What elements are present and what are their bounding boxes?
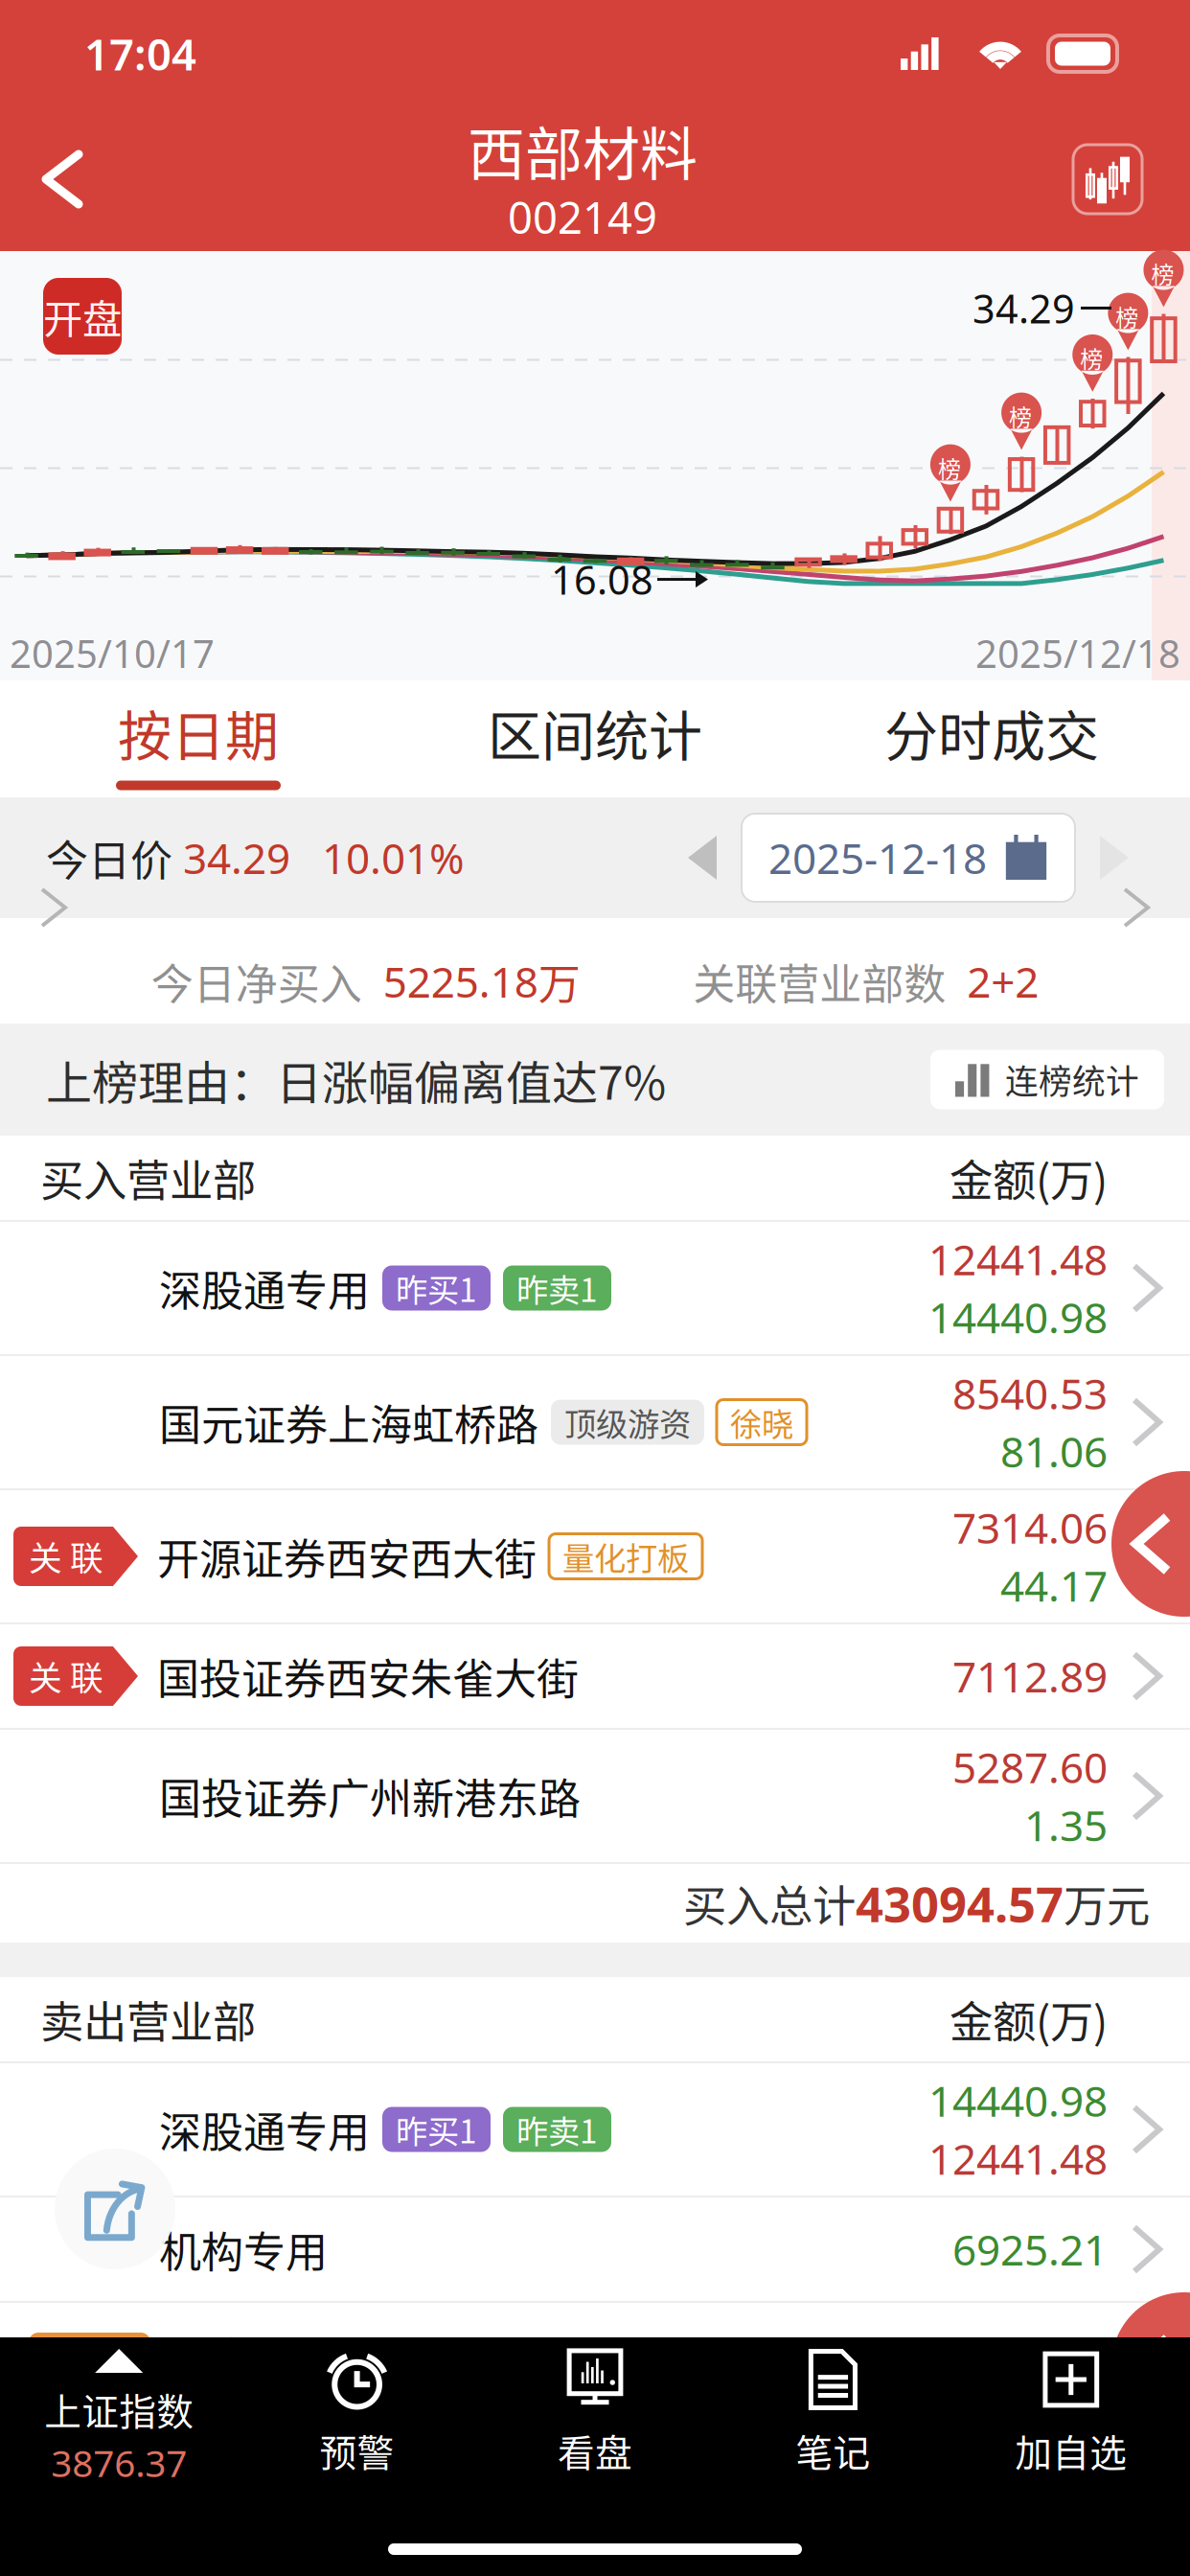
staticText: 国投证券广州新港东路 [159,1765,581,1826]
staticText: 002149 [508,188,657,246]
staticText: 81.06 [1000,1423,1108,1479]
staticText: 7112.89 [952,1648,1108,1704]
staticText: 国金证券上海互联网 [168,2325,547,2386]
staticText: 昨卖1 [516,1265,598,1311]
staticText: 徐晓 [730,1399,793,1445]
staticText: 2025-12-18 [768,830,987,886]
staticText: 7314.06 [952,1499,1108,1555]
staticText: 44.17 [1000,1557,1108,1613]
staticText: 榜 [1151,256,1174,290]
staticText: 看盘 [558,2424,632,2477]
staticText: 连榜统计 [1005,1056,1139,1104]
staticText: 买入总计 [683,1872,856,1935]
staticText: 榜 [1009,399,1032,433]
staticText: 34.29 [973,282,1075,334]
staticText: 关 联 [29,1532,103,1580]
staticText: 一年内 [42,2332,137,2378]
staticText: 按日期 [118,693,279,771]
staticText: 笔记 [796,2424,870,2477]
button[interactable]: 按日期 [0,680,397,797]
button[interactable]: Expand sell panel [1111,2292,1190,2438]
staticText: 14440.98 [928,1289,1108,1345]
button[interactable]: 连榜统计 [930,1050,1164,1109]
staticText: 机构专用 [159,2219,328,2280]
staticText: 关联营业部数 [693,951,946,1012]
staticText: 5225.18 [362,953,538,1009]
staticText: 今日净买入 [151,951,362,1012]
button[interactable]: 上证指数 [0,2349,238,2483]
staticText: 开盘 [43,288,122,345]
staticText: 关 联 [29,1652,103,1700]
button[interactable]: 关 联 [0,1624,1190,1730]
staticText: 16.08 [551,553,653,606]
staticText: 量化打板 [562,1533,689,1580]
button[interactable]: 加自选 [952,2349,1190,2483]
button[interactable]: Back [0,107,125,251]
staticText: 6342.80 [952,2327,1108,2383]
button[interactable]: 看盘 [476,2349,714,2483]
staticText: 今日价 [46,827,172,888]
staticText: 上证指数 [44,2382,194,2436]
staticText: 榜 [938,451,961,484]
staticText: 2025/10/17 [10,628,215,678]
button[interactable]: 国投证券广州新港东路 [0,1730,1190,1864]
staticText: 10.01% [290,830,465,886]
staticText: 昨买1 [396,2106,477,2153]
staticText: 国投证券西安朱雀大街 [157,1646,579,1707]
staticText: 万 [538,951,580,1012]
staticText: 西部材料 [468,109,698,192]
staticText: 43094.57 [856,1871,1064,1936]
staticText: 加自选 [1015,2424,1127,2477]
button[interactable]: 关 联 [0,1490,1190,1624]
staticText: 上榜理由：日涨幅偏离值达7% [46,1046,666,1113]
staticText: 卖出营业部 [40,1988,256,2051]
button[interactable]: 区间统计 [397,680,793,797]
staticText: 2025/12/18 [975,628,1180,678]
button[interactable]: 一年内 [0,2303,1190,2407]
button[interactable]: 机构专用 [0,2197,1190,2303]
staticText: 昨买1 [396,1265,477,1311]
staticText: 12441.48 [928,2130,1108,2186]
staticText: 14440.98 [928,2072,1108,2128]
button[interactable]: Expand panel [1111,1471,1190,1617]
staticText: 昨卖1 [516,2106,598,2153]
button[interactable]: 分时成交 [793,680,1190,797]
staticText: 开源证券西安西大街 [157,1526,537,1587]
staticText: 6925.21 [952,2221,1108,2277]
staticText: 深股通专用 [159,2099,370,2160]
staticText: 金额(万) [950,1146,1108,1209]
staticText: 深股通专用 [159,1257,370,1318]
button[interactable]: 笔记 [714,2349,952,2483]
staticText: 万元 [1064,1872,1150,1935]
button[interactable]: 国元证券上海虹桥路 [0,1356,1190,1490]
staticText: 顶级游资 [564,1399,691,1445]
button[interactable]: Previous day [663,836,742,880]
staticText: 5287.60 [952,1739,1108,1795]
button[interactable]: K-line chart [1073,145,1190,214]
staticText: 预警 [320,2424,394,2477]
button[interactable]: 深股通专用 [0,1222,1190,1356]
staticText: 1.35 [1024,1797,1108,1853]
button[interactable]: Share [55,2149,175,2269]
staticText: 榜 [1080,341,1103,375]
button[interactable]: 深股通专用 [0,2063,1190,2197]
staticText: 区间统计 [488,693,702,771]
staticText: 分时成交 [884,693,1099,771]
staticText: 34.29 [172,830,290,886]
staticText: 8540.53 [952,1365,1108,1421]
button[interactable]: 2025-12-18 [742,814,1075,902]
staticText: 国元证券上海虹桥路 [159,1392,538,1453]
staticText: 2+2 [946,953,1039,1009]
staticText: 买入营业部 [40,1146,256,1209]
button[interactable]: Next day [1075,836,1154,880]
button[interactable]: 预警 [238,2349,476,2483]
staticText: 榜 [1116,300,1139,333]
staticText: 3876.37 [51,2438,187,2487]
staticText: 12441.48 [928,1231,1108,1287]
staticText: 金额(万) [950,1988,1108,2051]
staticText: 17:04 [84,25,196,83]
